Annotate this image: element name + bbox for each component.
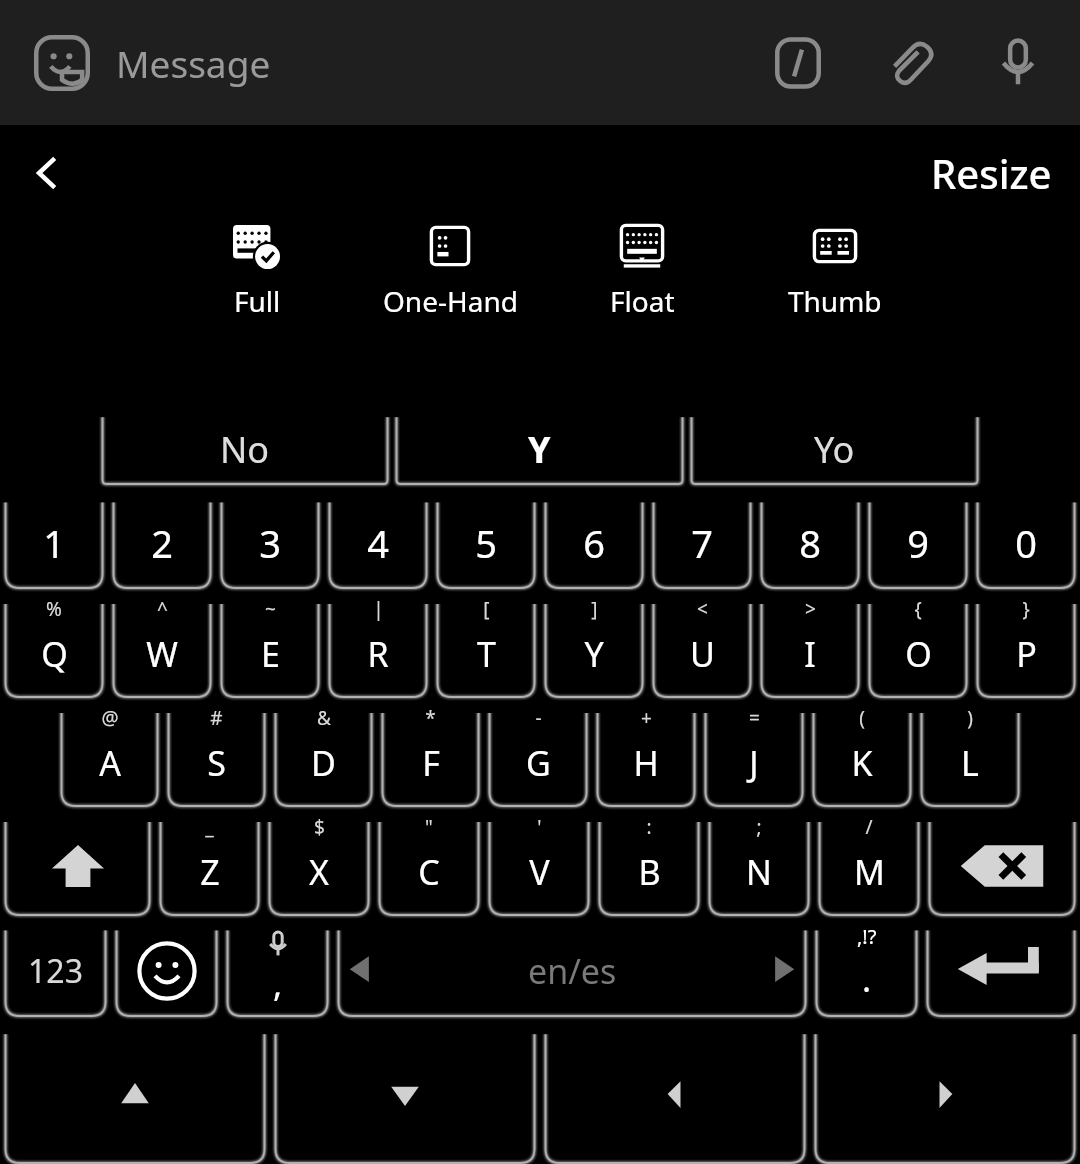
button[interactable]: Stickers [34, 35, 90, 91]
staticText: G [526, 740, 551, 786]
button[interactable]: [ [432, 598, 540, 698]
button[interactable]: Resize [931, 146, 1052, 200]
button[interactable]: No [98, 413, 392, 485]
button[interactable]: # [163, 707, 270, 807]
button[interactable]: 2 [108, 497, 216, 589]
button[interactable]: < [648, 598, 756, 698]
button[interactable]: = [700, 707, 808, 807]
staticText: ; [756, 814, 762, 840]
button[interactable]: Thumb [740, 220, 930, 320]
staticText: # [210, 705, 223, 731]
button[interactable]: @ [56, 707, 163, 807]
staticText: E [261, 631, 280, 677]
button[interactable]: Backspace [924, 816, 1080, 916]
button[interactable]: 8 [756, 497, 864, 589]
button[interactable]: Voice message [990, 35, 1046, 91]
staticText: + [641, 705, 652, 731]
button[interactable]: One-Hand [355, 220, 545, 320]
staticText: Q [41, 631, 68, 677]
staticText: } [1022, 596, 1030, 622]
staticText: ~ [265, 596, 276, 622]
button[interactable]: { [864, 598, 972, 698]
staticText: 1 [43, 517, 65, 569]
button[interactable]: / [814, 816, 924, 916]
button[interactable]: Comma and voice input [222, 925, 333, 1017]
staticText: @ [101, 705, 119, 731]
button[interactable]: Right [810, 1026, 1080, 1164]
button[interactable]: $ [264, 816, 374, 916]
button[interactable]: _ [155, 816, 264, 916]
button[interactable]: 3 [216, 497, 324, 589]
button[interactable]: 123 [0, 925, 111, 1017]
staticText: B [638, 849, 661, 895]
button[interactable]: 1 [0, 497, 108, 589]
staticText: O [905, 631, 932, 677]
staticText: Message [116, 38, 271, 88]
button[interactable]: & [270, 707, 377, 807]
staticText: : [646, 814, 652, 840]
button[interactable]: Down [270, 1026, 540, 1164]
button[interactable]: 0 [972, 497, 1080, 589]
staticText: Thumb [788, 282, 882, 320]
button[interactable]: ~ [216, 598, 324, 698]
staticText: ' [537, 814, 542, 840]
button[interactable]: * [377, 707, 484, 807]
button[interactable]: 6 [540, 497, 648, 589]
button[interactable]: 7 [648, 497, 756, 589]
staticText: ^ [157, 596, 168, 622]
staticText: [ [483, 596, 490, 622]
staticText: ] [591, 596, 598, 622]
staticText: S [207, 740, 226, 786]
button[interactable]: Up [0, 1026, 270, 1164]
button[interactable]: Shift [0, 816, 155, 916]
button[interactable]: ) [916, 707, 1024, 807]
staticText: 3 [259, 517, 281, 569]
button[interactable]: 4 [324, 497, 432, 589]
button[interactable]: : [594, 816, 704, 916]
staticText: C [418, 849, 440, 895]
staticText: No [220, 425, 270, 474]
button[interactable]: Emoji [111, 925, 222, 1017]
button[interactable]: Text styles [770, 35, 826, 91]
button[interactable]: 5 [432, 497, 540, 589]
button[interactable]: ^ [108, 598, 216, 698]
staticText: & [317, 705, 331, 731]
button[interactable]: | [324, 598, 432, 698]
staticText: . [862, 956, 872, 1002]
button[interactable]: Back [20, 145, 76, 201]
button[interactable]: + [592, 707, 700, 807]
staticText: Y [584, 631, 604, 677]
button[interactable]: 9 [864, 497, 972, 589]
staticText: ( [859, 705, 865, 731]
staticText: 7 [691, 517, 713, 569]
button[interactable]: Attach [880, 35, 936, 91]
button[interactable]: ' [484, 816, 594, 916]
button[interactable]: ( [808, 707, 916, 807]
staticText: One-Hand [383, 282, 518, 320]
button[interactable]: % [0, 598, 108, 698]
button[interactable]: " [374, 816, 484, 916]
button[interactable]: Y [392, 413, 687, 485]
button[interactable]: Enter [922, 925, 1080, 1017]
button[interactable]: Float [547, 220, 737, 320]
staticText: | [373, 596, 384, 622]
staticText: Z [200, 849, 220, 895]
staticText: Yo [814, 425, 855, 474]
staticText: J [749, 740, 759, 786]
button[interactable]: Period [811, 925, 922, 1017]
button[interactable]: Yo [687, 413, 982, 485]
button[interactable]: en/es [333, 925, 811, 1017]
button[interactable]: ] [540, 598, 648, 698]
button[interactable]: Left [540, 1026, 810, 1164]
button[interactable]: ; [704, 816, 814, 916]
button[interactable]: } [972, 598, 1080, 698]
staticText: 2 [151, 517, 173, 569]
staticText: 9 [907, 517, 929, 569]
button[interactable]: > [756, 598, 864, 698]
staticText: _ [205, 814, 214, 840]
button[interactable]: - [484, 707, 592, 807]
staticText: 5 [475, 517, 497, 569]
staticText: 6 [583, 517, 605, 569]
button[interactable]: Full [162, 220, 352, 320]
staticText: N [746, 849, 772, 895]
